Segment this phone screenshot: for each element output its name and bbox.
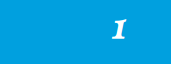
staticText: 1 [111,2,125,51]
